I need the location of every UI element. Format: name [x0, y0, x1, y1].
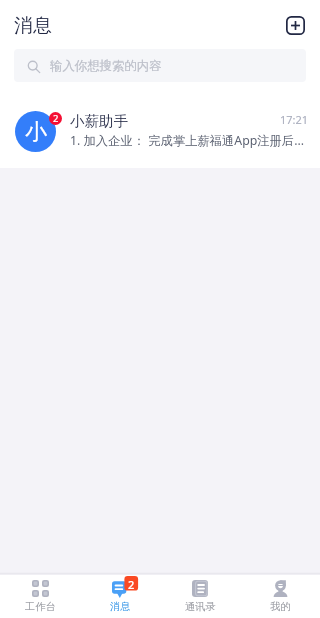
button[interactable]: 我的 [240, 575, 320, 618]
button[interactable]: New chat [286, 16, 305, 35]
staticText: 输入你想搜索的内容 [50, 58, 162, 74]
button[interactable]: 通讯录 [160, 575, 240, 618]
staticText: 小 [25, 118, 47, 146]
staticText: 通讯录 [185, 600, 216, 613]
staticText: 1. 加入企业： 完成掌上薪福通App注册后... [70, 132, 305, 149]
staticText: 17:21 [280, 112, 309, 127]
button[interactable]: 2 [80, 575, 160, 618]
button[interactable]: 工作台 [0, 575, 80, 618]
staticText: 小薪助手 [70, 112, 128, 130]
staticText: 2 [53, 112, 59, 125]
button[interactable]: 输入你想搜索的内容 [14, 49, 306, 82]
staticText: 消息 [14, 14, 52, 38]
staticText: 2 [128, 577, 135, 592]
staticText: 工作台 [25, 600, 56, 613]
staticText: 消息 [110, 600, 131, 613]
button[interactable]: 小 [0, 102, 320, 160]
staticText: 我的 [270, 600, 291, 613]
